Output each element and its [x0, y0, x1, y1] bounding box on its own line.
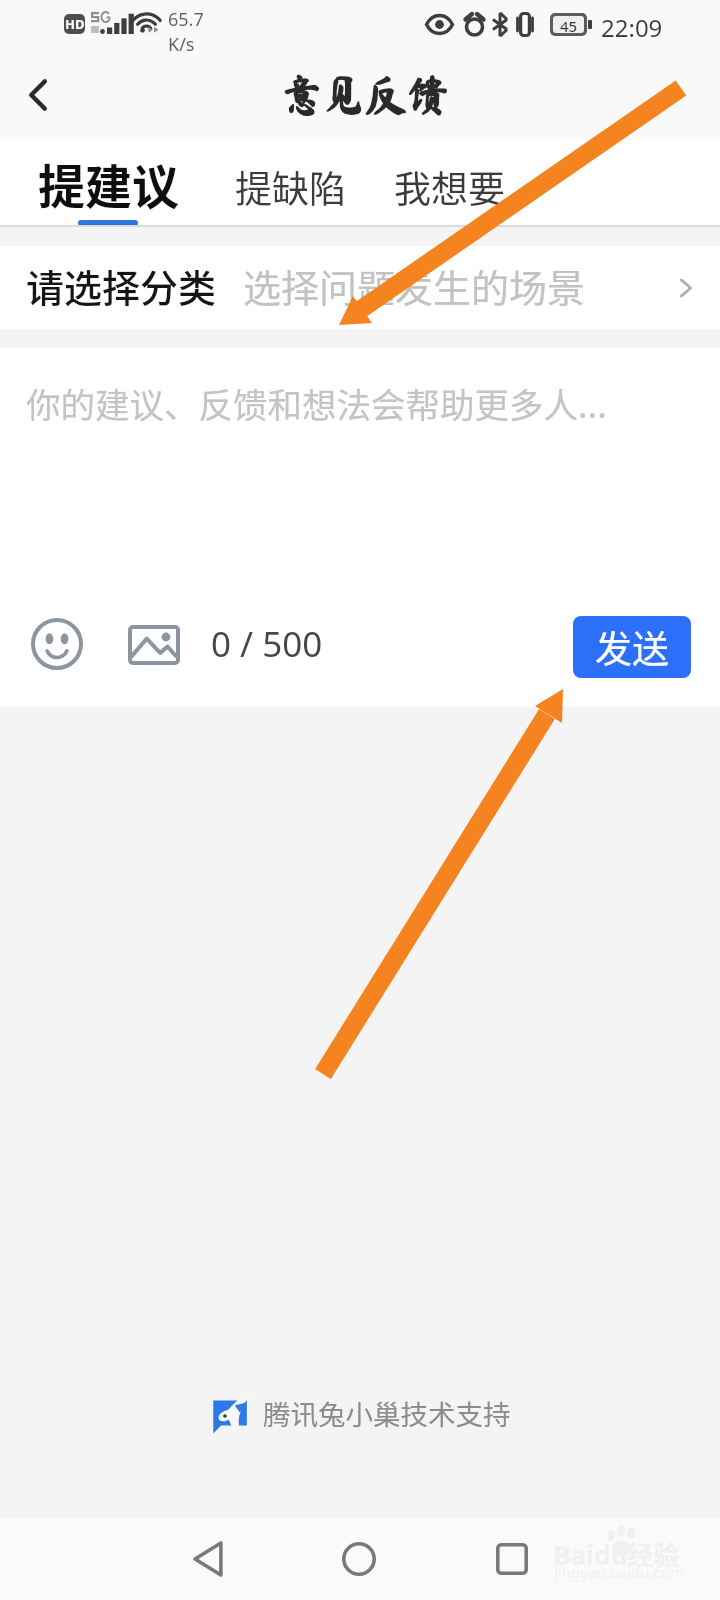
staticText: Baidu经验	[553, 1535, 680, 1573]
staticText: 提缺陷	[235, 160, 346, 214]
button[interactable]: Recents	[472, 1518, 552, 1600]
staticText: 我想要	[394, 160, 505, 214]
staticText: 45	[560, 16, 578, 33]
button[interactable]: Emoji	[31, 618, 83, 670]
button[interactable]: Back	[170, 1518, 250, 1600]
button[interactable]: 我想要	[343, 140, 508, 225]
staticText: 你的建议、反馈和想法会帮助更多人...	[26, 378, 607, 428]
button[interactable]: Home	[319, 1518, 399, 1600]
button[interactable]: 提建议	[0, 140, 178, 225]
staticText: K/s	[168, 32, 195, 57]
button[interactable]: 发送	[573, 616, 691, 678]
button[interactable]: 提缺陷	[178, 140, 343, 225]
staticText: 65.7	[168, 7, 204, 32]
staticText: 提建议	[38, 149, 179, 217]
button[interactable]: Add image	[128, 625, 180, 665]
staticText: 发送	[595, 620, 669, 674]
staticText: 意见反馈	[280, 74, 449, 116]
button[interactable]: Back	[0, 55, 76, 140]
staticText: 请选择分类	[26, 258, 217, 313]
staticText: jingyan.baidu.com	[554, 1562, 684, 1582]
staticText: 22:09	[601, 11, 663, 44]
staticText: HD	[65, 15, 85, 33]
staticText: 选择问题发生的场景	[243, 258, 586, 313]
staticText: 腾讯兔小巢技术支持	[263, 1393, 511, 1433]
staticText: 0 / 500	[211, 620, 323, 668]
button[interactable]: 请选择分类	[0, 246, 720, 329]
